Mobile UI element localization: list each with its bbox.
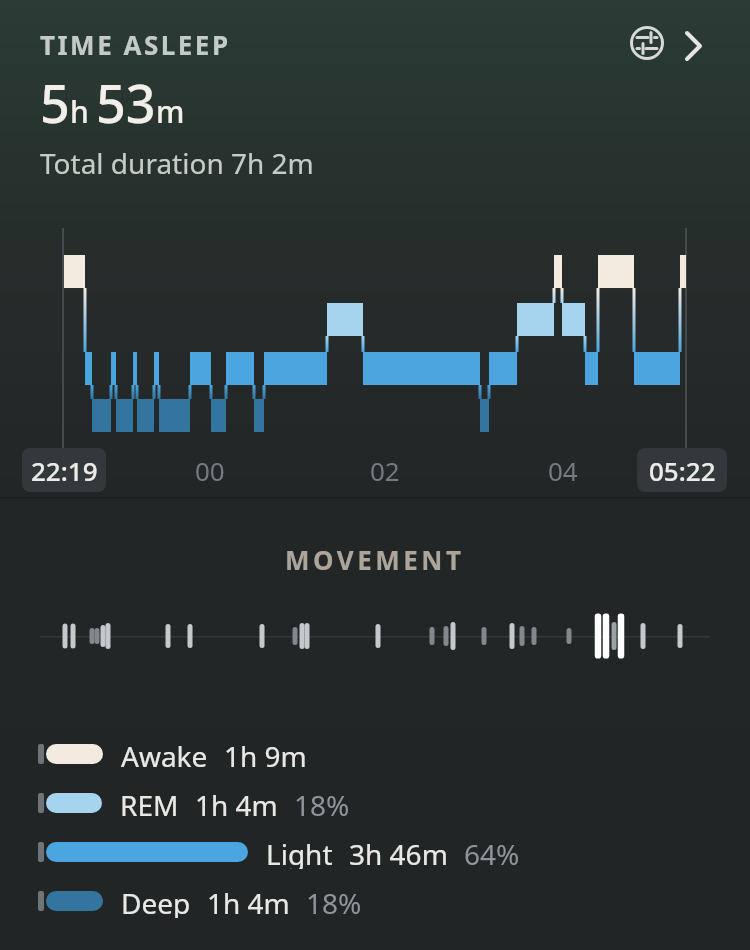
- button[interactable]: TIME ASLEEP: [28, 20, 588, 68]
- staticText: MOVEMENT: [285, 542, 465, 577]
- button[interactable]: [625, 21, 669, 65]
- staticText: 5: [40, 67, 70, 138]
- staticText: 1h 4m: [207, 884, 290, 918]
- staticText: REM: [120, 786, 179, 820]
- staticText: 04: [548, 453, 578, 488]
- staticText: 18%: [294, 786, 350, 820]
- staticText: 3h 46m: [349, 835, 448, 869]
- staticText: 64%: [464, 835, 520, 869]
- staticText: Total duration 7h 2m: [40, 144, 314, 182]
- staticText: 00: [195, 453, 225, 488]
- staticText: m: [156, 91, 185, 132]
- staticText: 02: [370, 453, 400, 488]
- button[interactable]: [673, 26, 713, 66]
- staticText: 1h 9m: [224, 737, 307, 771]
- staticText: h: [70, 91, 89, 132]
- staticText: 1h 4m: [195, 786, 278, 820]
- staticText: Light: [266, 835, 333, 869]
- staticText: 22:19: [31, 453, 98, 488]
- staticText: 18%: [306, 884, 362, 918]
- staticText: Awake: [121, 737, 208, 771]
- staticText: TIME ASLEEP: [40, 27, 231, 62]
- staticText: 05:22: [649, 453, 716, 488]
- staticText: 53: [96, 67, 156, 138]
- staticText: Deep: [121, 884, 191, 918]
